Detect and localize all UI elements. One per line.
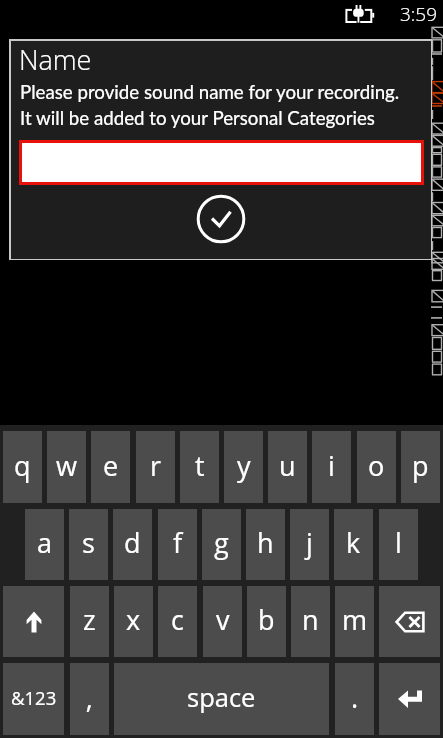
button[interactable]: x — [114, 586, 153, 657]
button[interactable]: d — [113, 509, 152, 580]
button[interactable]: u — [268, 431, 307, 503]
staticText: , — [86, 679, 93, 716]
staticText: r — [150, 447, 162, 484]
button[interactable]: Name input — [19, 140, 424, 185]
staticText: t — [195, 447, 205, 484]
staticText: . — [351, 679, 359, 716]
staticText: a — [37, 524, 53, 561]
staticText: h — [257, 524, 274, 561]
button[interactable]: . — [335, 663, 374, 735]
button[interactable]: p — [401, 431, 440, 503]
staticText: space — [187, 680, 256, 715]
button[interactable]: z — [70, 586, 109, 657]
button[interactable]: , — [70, 663, 109, 735]
button[interactable]: s — [69, 509, 108, 580]
staticText: k — [346, 524, 361, 561]
staticText: It will be added to your Personal Catego… — [20, 107, 375, 129]
button[interactable]: Backspace — [379, 586, 440, 657]
button[interactable]: c — [158, 586, 197, 657]
staticText: y — [237, 447, 251, 484]
button[interactable]: Shift — [3, 586, 64, 657]
staticText: g — [214, 524, 229, 561]
staticText: n — [302, 601, 319, 638]
button[interactable]: w — [47, 431, 86, 503]
button[interactable]: n — [291, 586, 330, 657]
button[interactable]: h — [246, 509, 285, 580]
button[interactable]: Accept — [196, 194, 246, 244]
staticText: e — [103, 447, 119, 484]
staticText: Please provide sound name for your recor… — [20, 81, 400, 103]
staticText: f — [173, 524, 183, 561]
staticText: j — [306, 524, 313, 561]
staticText: o — [368, 447, 385, 484]
button[interactable]: i — [312, 431, 351, 503]
staticText: w — [56, 447, 78, 484]
button[interactable]: t — [180, 431, 219, 503]
other: Battery charging — [344, 3, 376, 25]
button[interactable]: l — [379, 509, 418, 580]
staticText: q — [14, 447, 31, 484]
staticText: c — [171, 601, 184, 638]
staticText: l — [395, 524, 402, 561]
button[interactable]: space — [114, 663, 329, 735]
button[interactable]: a — [25, 509, 64, 580]
staticText: b — [258, 601, 275, 638]
button[interactable]: q — [3, 431, 42, 503]
staticText: m — [342, 601, 368, 638]
button[interactable]: m — [335, 586, 374, 657]
button[interactable]: &123 — [3, 663, 64, 735]
staticText: i — [328, 447, 335, 484]
button[interactable]: j — [290, 509, 329, 580]
staticText: Name — [19, 41, 92, 78]
button[interactable]: f — [158, 509, 197, 580]
button[interactable]: r — [136, 431, 175, 503]
button[interactable]: k — [334, 509, 373, 580]
staticText: s — [82, 524, 95, 561]
button[interactable]: Enter — [379, 663, 440, 735]
staticText: p — [412, 447, 429, 484]
button[interactable]: v — [203, 586, 242, 657]
button[interactable]: b — [247, 586, 286, 657]
staticText: v — [216, 601, 230, 638]
staticText: z — [83, 601, 96, 638]
button[interactable]: o — [357, 431, 396, 503]
staticText: x — [126, 601, 141, 638]
button[interactable]: y — [224, 431, 263, 503]
staticText: &123 — [11, 685, 57, 710]
button[interactable]: g — [202, 509, 241, 580]
staticText: u — [279, 447, 296, 484]
staticText: 3:59 — [400, 1, 438, 27]
staticText: d — [124, 524, 141, 561]
button[interactable]: e — [91, 431, 130, 503]
